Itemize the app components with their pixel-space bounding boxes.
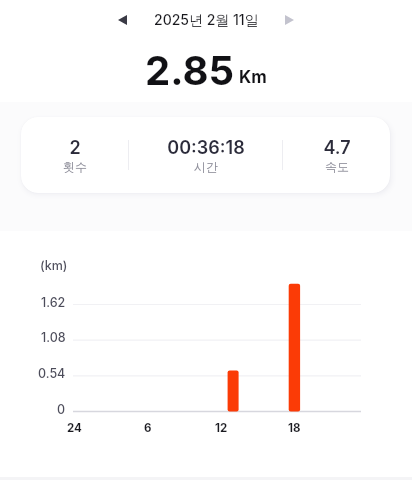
staticText: (km) (40, 258, 68, 273)
staticText: 4.7 (323, 137, 351, 159)
button[interactable]: Previous day (104, 1, 141, 38)
staticText: 시간 (194, 159, 218, 174)
staticText: 1.62 (41, 295, 66, 310)
button[interactable]: Next day (271, 1, 308, 38)
staticText: 2.85 (145, 46, 235, 94)
staticText: 12 (215, 421, 228, 435)
staticText: 00:36:18 (167, 137, 245, 159)
staticText: Km (239, 67, 267, 88)
staticText: 횟수 (63, 159, 87, 174)
staticText: 1.08 (41, 330, 66, 345)
staticText: 0 (57, 402, 66, 417)
staticText: 6 (144, 421, 152, 435)
staticText: 2 (69, 137, 81, 159)
staticText: 18 (288, 421, 301, 435)
staticText: 속도 (325, 159, 349, 174)
staticText: 24 (67, 421, 82, 435)
staticText: 2025년 2월 11일 (154, 11, 259, 29)
staticText: 0.54 (38, 366, 66, 381)
